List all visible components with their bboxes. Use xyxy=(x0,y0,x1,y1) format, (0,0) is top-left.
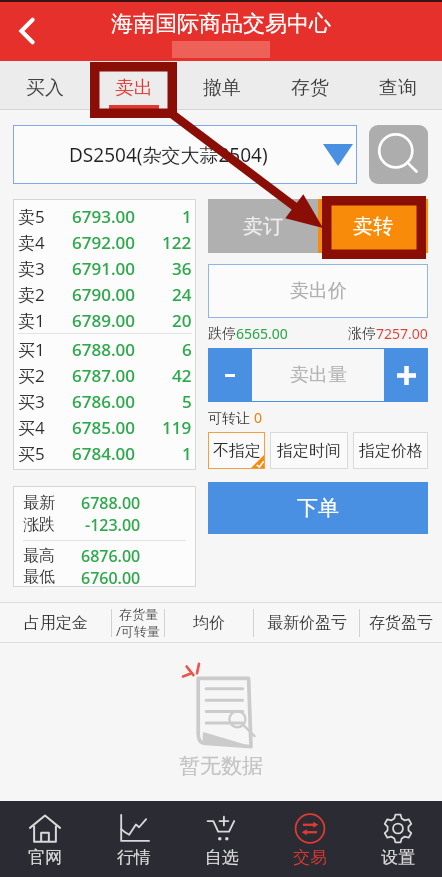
staticText: 6 xyxy=(182,338,192,361)
staticText: 6876.00 xyxy=(81,545,141,567)
button[interactable]: 卖1 xyxy=(18,307,192,333)
button[interactable]: 撤单 xyxy=(178,61,266,110)
button[interactable]: 指定时间 xyxy=(270,432,348,469)
staticText: 指定时间 xyxy=(277,441,341,461)
button[interactable]: 卖出量 xyxy=(252,349,384,401)
staticText: 6792.00 xyxy=(72,231,135,254)
staticText: 6786.00 xyxy=(72,390,135,413)
staticText: 设置 xyxy=(381,847,415,868)
staticText: 6565.00 xyxy=(236,324,288,343)
staticText: 涨停 xyxy=(348,325,376,343)
button[interactable]: 交易 xyxy=(266,801,354,877)
staticText: 卖出量 xyxy=(290,363,347,387)
staticText: 卖1 xyxy=(18,309,45,332)
staticText: /可转量 xyxy=(116,622,160,640)
staticText: 暂无数据 xyxy=(179,753,263,779)
button[interactable]: 行情 xyxy=(89,801,178,877)
staticText: 买入 xyxy=(26,76,64,100)
staticText: 0 xyxy=(254,408,263,427)
staticText: 6787.00 xyxy=(72,364,135,387)
staticText: 1 xyxy=(182,442,192,465)
staticText: 跌停 xyxy=(208,325,236,343)
button[interactable]: Back xyxy=(4,8,50,54)
button[interactable]: 卖4 xyxy=(18,229,192,255)
staticText: 不指定 xyxy=(213,441,261,461)
staticText: 卖3 xyxy=(18,257,45,280)
staticText: 存货 xyxy=(291,76,329,100)
button[interactable]: Decrease xyxy=(208,348,252,402)
staticText: 下单 xyxy=(297,495,339,521)
staticText: 卖出价 xyxy=(290,279,347,303)
button[interactable]: 设置 xyxy=(354,801,442,877)
button[interactable]: 卖3 xyxy=(18,255,192,281)
button[interactable]: 存货 xyxy=(266,61,354,110)
button[interactable]: 卖转 xyxy=(318,199,428,253)
staticText: 6760.00 xyxy=(81,567,141,587)
button[interactable]: 买5 xyxy=(18,440,192,466)
button[interactable]: 不指定 xyxy=(208,432,265,469)
staticText: 指定价格 xyxy=(359,441,423,461)
staticText: 卖5 xyxy=(18,205,45,228)
button[interactable]: 卖5 xyxy=(18,203,192,229)
staticText: 6788.00 xyxy=(72,338,135,361)
staticText: 行情 xyxy=(117,847,151,868)
button[interactable]: DS2504(杂交大蒜2504) xyxy=(13,125,357,184)
button[interactable]: 买4 xyxy=(18,414,192,440)
button[interactable]: 买3 xyxy=(18,388,192,414)
button[interactable]: 买1 xyxy=(18,336,192,362)
staticText: 自选 xyxy=(205,847,239,868)
staticText: 36 xyxy=(172,257,192,280)
button[interactable]: 自选 xyxy=(178,801,266,877)
staticText: 最新价盈亏 xyxy=(267,613,347,633)
staticText: 卖出 xyxy=(115,76,153,100)
staticText: 122 xyxy=(162,231,192,254)
button[interactable]: 官网 xyxy=(0,801,89,877)
staticText: 均价 xyxy=(193,613,225,633)
staticText: 6793.00 xyxy=(72,205,135,228)
staticText: DS2504(杂交大蒜2504) xyxy=(69,142,268,168)
staticText: 6789.00 xyxy=(72,309,135,332)
staticText: 最低 xyxy=(23,567,55,587)
staticText: 买1 xyxy=(18,338,45,361)
staticText: 20 xyxy=(172,309,192,332)
button[interactable]: 查询 xyxy=(354,61,442,110)
button[interactable]: 买2 xyxy=(18,362,192,388)
staticText: 6788.00 xyxy=(81,492,141,514)
staticText: 卖2 xyxy=(18,283,45,306)
staticText: 查询 xyxy=(379,76,417,100)
button[interactable]: 下单 xyxy=(208,482,428,534)
staticText: 6790.00 xyxy=(72,283,135,306)
staticText: 卖转 xyxy=(353,214,393,239)
staticText: 交易 xyxy=(293,847,327,868)
button[interactable]: 卖出 xyxy=(89,61,178,110)
button[interactable]: 卖2 xyxy=(18,281,192,307)
staticText: 最新 xyxy=(23,493,55,513)
button[interactable]: 卖出价 xyxy=(208,264,428,318)
staticText: 42 xyxy=(172,364,192,387)
staticText: 可转让 xyxy=(208,408,254,427)
staticText: 7257.00 xyxy=(376,324,428,343)
staticText: 占用定金 xyxy=(24,613,88,633)
staticText: 海南国际商品交易中心 xyxy=(111,10,331,38)
button[interactable]: 卖订 xyxy=(208,199,318,253)
staticText: 119 xyxy=(162,416,192,439)
staticText: 6785.00 xyxy=(72,416,135,439)
staticText: 卖4 xyxy=(18,231,45,254)
staticText: 涨跌 xyxy=(23,515,55,535)
button[interactable]: Increase xyxy=(384,348,428,402)
staticText: -123.00 xyxy=(85,514,141,536)
staticText: 24 xyxy=(172,283,192,306)
staticText: 6784.00 xyxy=(72,442,135,465)
button[interactable]: Search xyxy=(369,125,428,184)
staticText: 最高 xyxy=(23,546,55,566)
staticText: 买2 xyxy=(18,364,45,387)
staticText: 买4 xyxy=(18,416,45,439)
staticText: 买5 xyxy=(18,442,45,465)
staticText: 卖订 xyxy=(243,214,283,239)
staticText: 官网 xyxy=(28,847,62,868)
staticText: 5 xyxy=(182,390,192,413)
button[interactable]: 买入 xyxy=(0,61,89,110)
staticText: 存货量 xyxy=(119,606,158,622)
staticText: 买3 xyxy=(18,390,45,413)
button[interactable]: 指定价格 xyxy=(353,432,428,469)
